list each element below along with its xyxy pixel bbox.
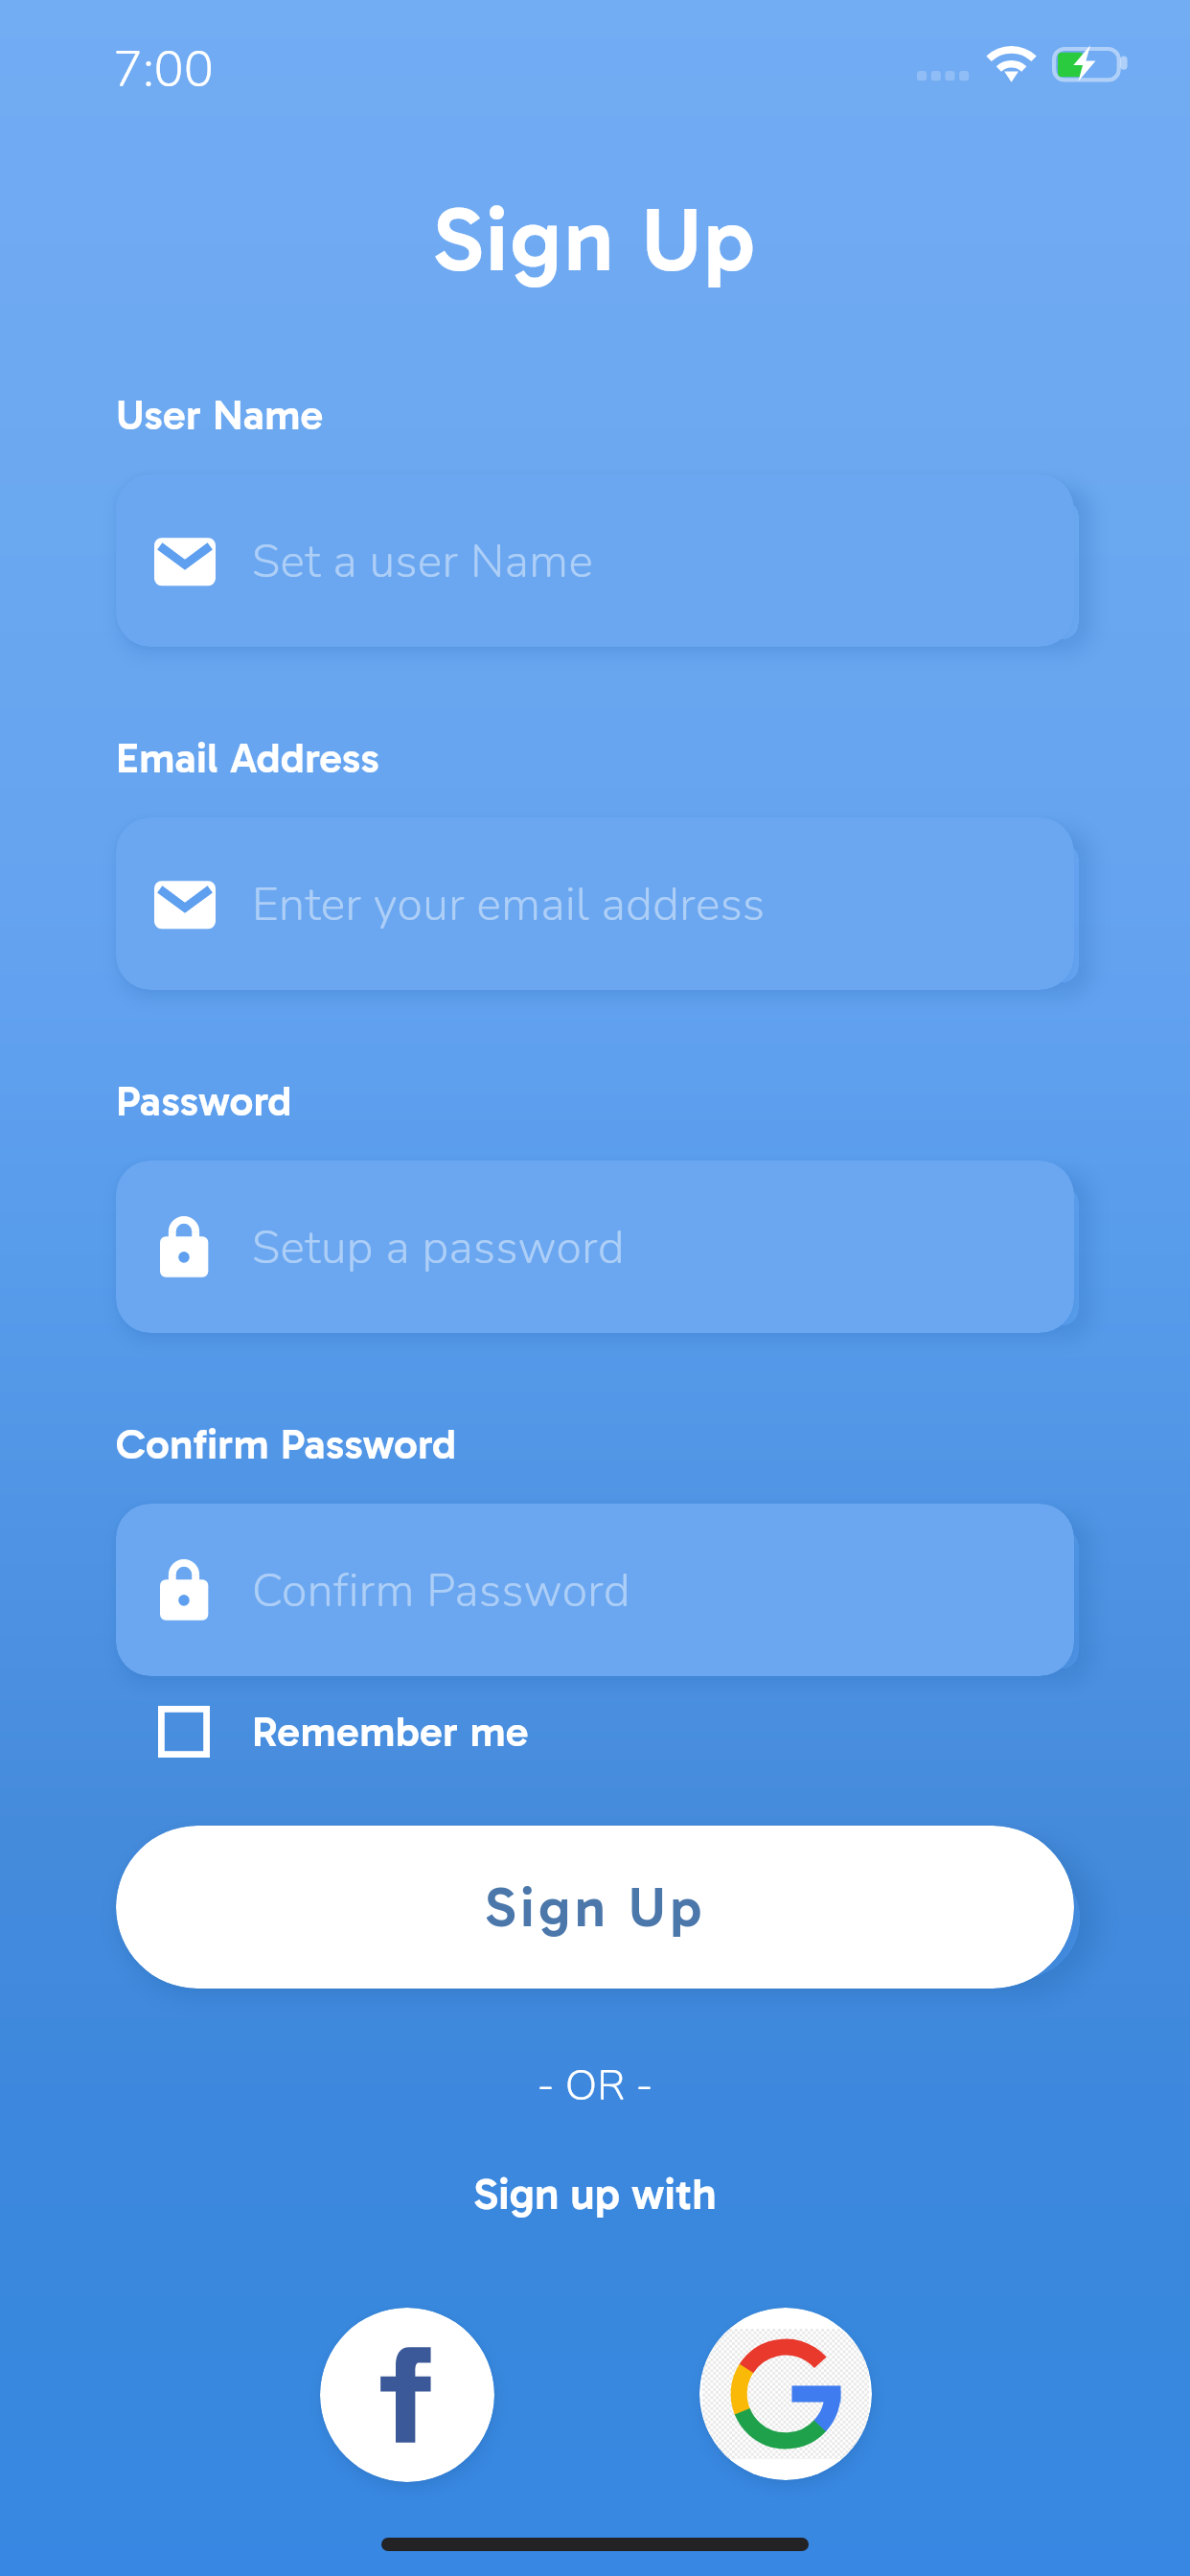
staticText: Sign Up [485, 1874, 706, 1941]
staticText: User Name [116, 390, 324, 441]
staticText: Setup a password [252, 1216, 625, 1278]
staticText: 7:00 [113, 35, 214, 103]
button[interactable]: Sign up with Facebook [320, 2308, 494, 2482]
staticText: Set a user Name [252, 530, 594, 592]
staticText: Remember me [252, 1707, 530, 1758]
staticText: - OR - [0, 2058, 1190, 2115]
staticText: Sign up with [0, 2168, 1190, 2220]
button[interactable]: Sign up with Google [699, 2308, 872, 2480]
staticText: Enter your email address [252, 873, 766, 935]
button[interactable]: Confirm Password [116, 1504, 1074, 1676]
button[interactable]: Setup a password [116, 1161, 1074, 1333]
button[interactable]: Enter your email address [116, 817, 1074, 990]
button[interactable]: Remember me [158, 1706, 530, 1758]
staticText: Sign Up [0, 186, 1190, 294]
staticText: Confirm Password [252, 1559, 630, 1621]
button[interactable]: Sign Up [116, 1826, 1074, 1989]
staticText: Email Address [116, 733, 380, 784]
staticText: Confirm Password [116, 1419, 457, 1470]
staticText: Password [116, 1076, 292, 1127]
button[interactable]: Set a user Name [116, 474, 1074, 647]
